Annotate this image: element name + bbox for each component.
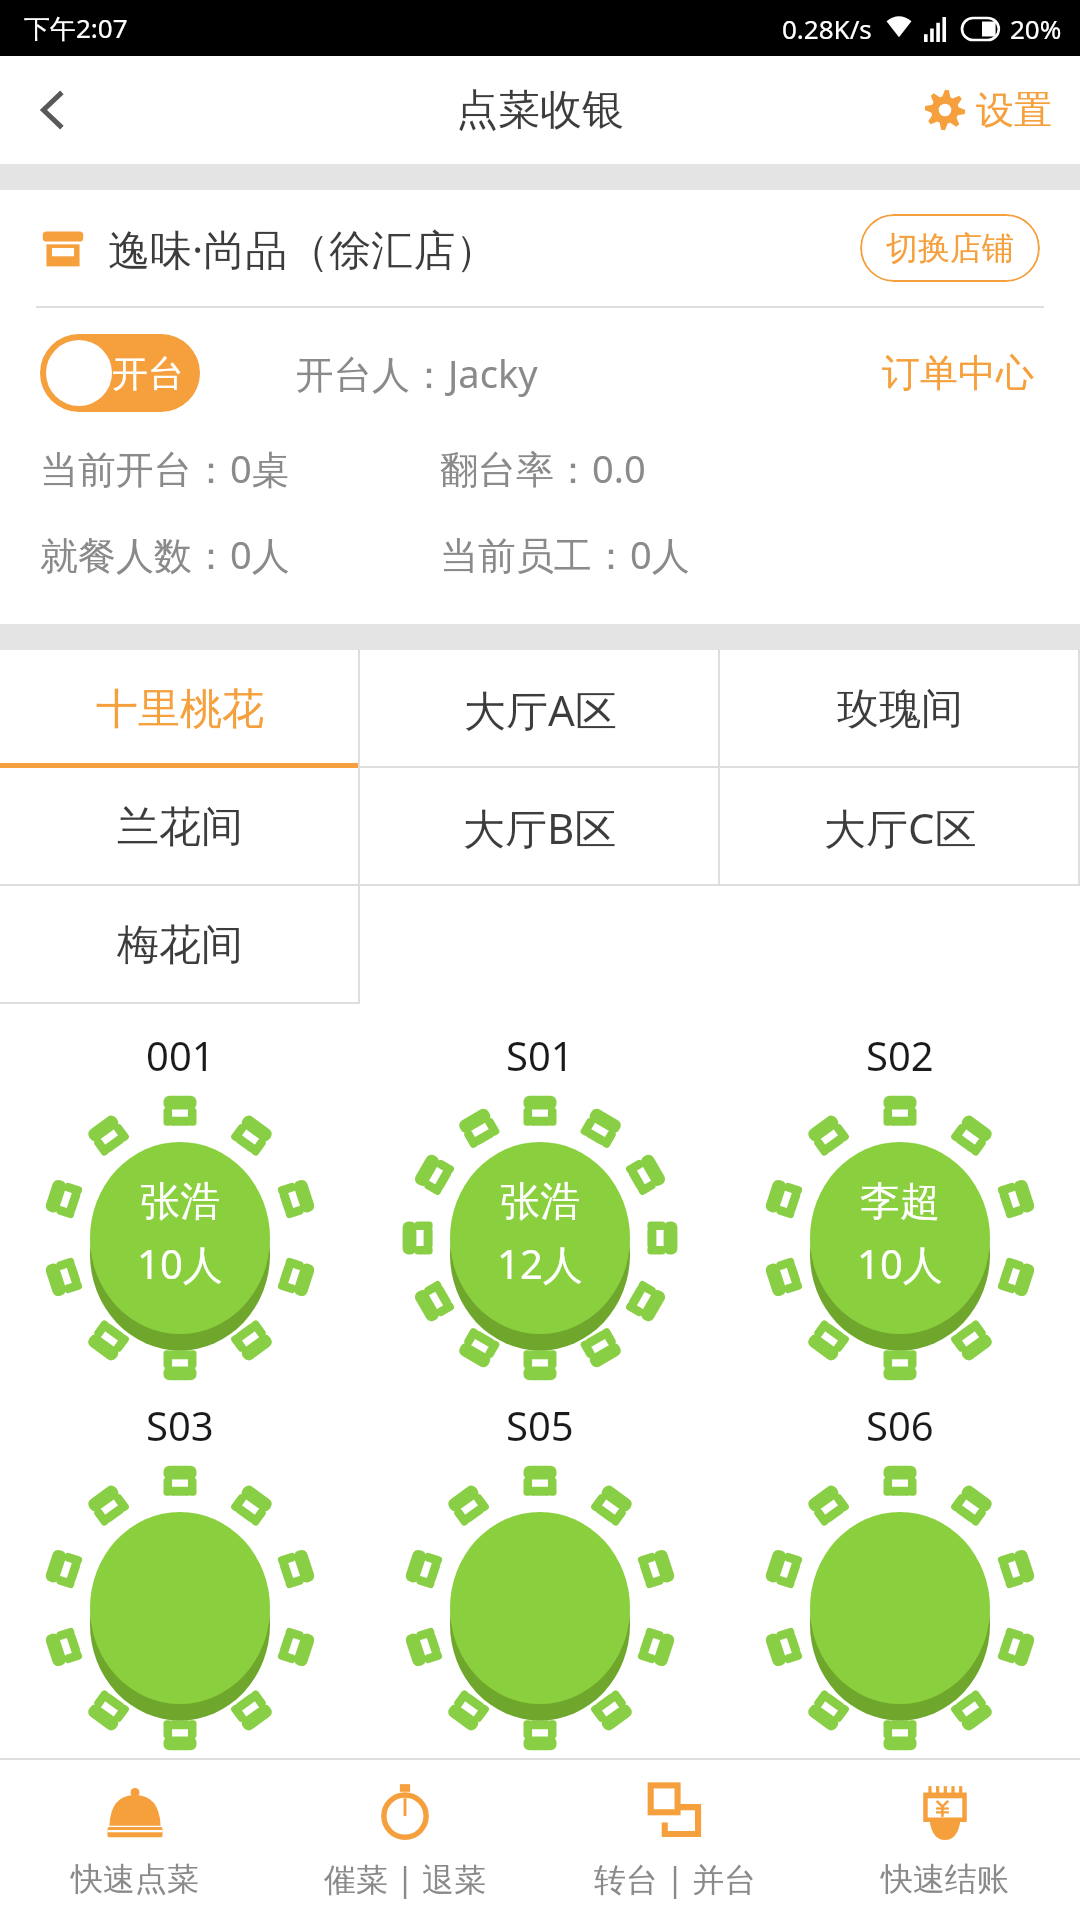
button[interactable]: Back bbox=[0, 56, 108, 164]
staticText: 订单中心 bbox=[882, 349, 1034, 397]
button[interactable]: 开台 bbox=[40, 334, 200, 412]
button[interactable]: S01 bbox=[360, 1028, 720, 1388]
staticText: 张浩 bbox=[140, 1176, 220, 1226]
button[interactable]: 大厅C区 bbox=[720, 768, 1080, 886]
staticText: 十里桃花 bbox=[96, 683, 264, 736]
button[interactable]: 大厅B区 bbox=[360, 768, 720, 886]
button[interactable]: 玫瑰间 bbox=[720, 650, 1080, 768]
button[interactable]: 设置 bbox=[918, 76, 1058, 144]
staticText: 当前员工：0人 bbox=[440, 528, 690, 580]
staticText: 下午2:07 bbox=[24, 10, 128, 46]
staticText: 玫瑰间 bbox=[837, 683, 963, 736]
staticText: 逸味·尚品（徐汇店） bbox=[108, 220, 498, 277]
staticText: 切换店铺 bbox=[886, 228, 1014, 268]
staticText: 就餐人数：0人 bbox=[40, 528, 440, 580]
staticText: 12人 bbox=[497, 1236, 583, 1291]
button[interactable]: S05 bbox=[360, 1398, 720, 1758]
button[interactable]: 快速结账 bbox=[810, 1760, 1080, 1920]
staticText: 开台人：Jacky bbox=[296, 347, 538, 399]
staticText: 设置 bbox=[976, 86, 1052, 134]
staticText: 0.28K/s bbox=[782, 11, 872, 46]
staticText: 10人 bbox=[137, 1236, 223, 1291]
staticText: 翻台率：0.0 bbox=[440, 442, 646, 494]
staticText: S06 bbox=[866, 1398, 934, 1452]
button[interactable]: 兰花间 bbox=[0, 768, 360, 886]
button[interactable]: 十里桃花 bbox=[0, 650, 360, 768]
staticText: 李超 bbox=[860, 1176, 940, 1226]
button[interactable]: 切换店铺 bbox=[860, 214, 1040, 282]
staticText: 开台 bbox=[112, 351, 184, 396]
staticText: 张浩 bbox=[500, 1176, 580, 1226]
button[interactable]: 梅花间 bbox=[0, 886, 360, 1004]
button[interactable]: 001 bbox=[0, 1028, 360, 1388]
staticText: 大厅C区 bbox=[824, 799, 977, 856]
staticText: 20% bbox=[1010, 11, 1062, 46]
button[interactable]: 订单中心 bbox=[876, 343, 1040, 403]
button[interactable]: 大厅A区 bbox=[360, 650, 720, 768]
staticText: 兰花间 bbox=[117, 801, 243, 854]
button[interactable]: S03 bbox=[0, 1398, 360, 1758]
staticText: 大厅A区 bbox=[464, 681, 617, 738]
button[interactable]: S02 bbox=[720, 1028, 1080, 1388]
staticText: S02 bbox=[866, 1028, 934, 1082]
staticText: 催菜 | 退菜 bbox=[324, 1857, 487, 1901]
staticText: 快速结账 bbox=[881, 1859, 1009, 1899]
staticText: 10人 bbox=[857, 1236, 943, 1291]
staticText: 快速点菜 bbox=[71, 1859, 199, 1899]
staticText: 转台 | 并台 bbox=[594, 1857, 757, 1901]
button[interactable]: 快速点菜 bbox=[0, 1760, 270, 1920]
staticText: 点菜收银 bbox=[456, 84, 624, 137]
staticText: 大厅B区 bbox=[463, 799, 617, 856]
staticText: S01 bbox=[506, 1028, 574, 1082]
staticText: 梅花间 bbox=[117, 919, 243, 972]
button[interactable]: S06 bbox=[720, 1398, 1080, 1758]
staticText: 当前开台：0桌 bbox=[40, 442, 440, 494]
button[interactable]: 转台 | 并台 bbox=[540, 1760, 810, 1920]
staticText: 001 bbox=[146, 1028, 215, 1082]
staticText: S05 bbox=[506, 1398, 574, 1452]
staticText: S03 bbox=[146, 1398, 214, 1452]
button[interactable]: 催菜 | 退菜 bbox=[270, 1760, 540, 1920]
